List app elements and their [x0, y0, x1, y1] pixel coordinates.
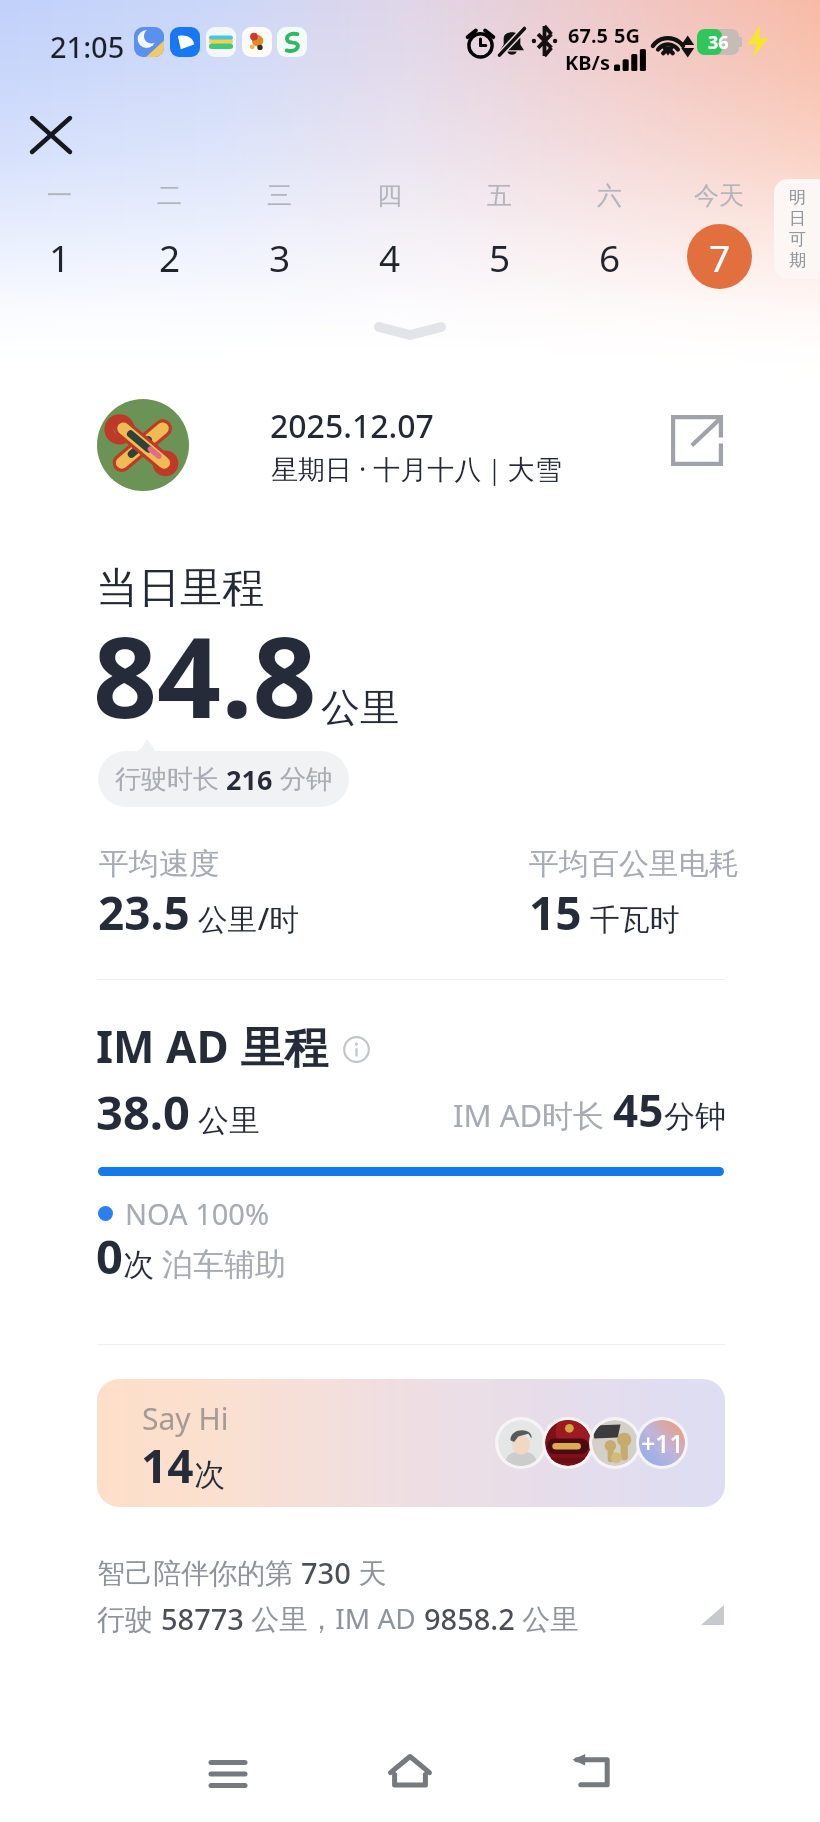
staticText: 泊车辅助 — [154, 1242, 287, 1284]
staticText: Say Hi — [142, 1398, 229, 1439]
staticText: 公里 — [515, 1599, 579, 1637]
staticText: 当日里程 — [96, 562, 264, 615]
staticText: 公里/时 — [190, 898, 300, 939]
staticText: 千瓦时 — [582, 898, 680, 939]
staticText: 58773 — [161, 1599, 244, 1638]
button[interactable]: 六 — [554, 180, 664, 289]
staticText: 5G — [614, 22, 640, 49]
staticText: 1 — [49, 232, 71, 282]
button[interactable]: 一 — [4, 180, 114, 289]
button[interactable]: Share — [666, 409, 728, 471]
staticText: 38.0 — [96, 1080, 190, 1144]
staticText: 次 — [194, 1455, 225, 1494]
staticText: 9858.2 — [424, 1599, 515, 1638]
button[interactable]: 今天 — [664, 180, 774, 289]
staticText: 智己陪伴你的第 — [97, 1553, 301, 1591]
staticText: 分钟 — [280, 763, 332, 796]
staticText: 2025.12.07 — [270, 404, 434, 448]
staticText: 67.5 — [568, 22, 608, 49]
staticText: 行驶 — [97, 1599, 161, 1637]
staticText: 84.8 — [93, 598, 317, 751]
staticText: 三 — [267, 180, 292, 211]
staticText: 4 — [379, 232, 401, 282]
staticText: 2 — [159, 232, 181, 282]
staticText: 日 — [789, 208, 806, 229]
staticText: 公里 — [190, 1098, 261, 1140]
button[interactable]: 二 — [114, 180, 224, 289]
staticText: +11 — [641, 1426, 684, 1460]
staticText: KB/s — [565, 49, 610, 76]
button[interactable]: 四 — [334, 180, 444, 289]
staticText: 四 — [377, 180, 402, 211]
staticText: 星期日 · 十月十八｜大雪 — [271, 450, 562, 487]
staticText: 3 — [269, 232, 291, 282]
staticText: 明 — [789, 187, 806, 208]
staticText: 23.5 — [98, 881, 190, 944]
button[interactable]: Home — [365, 1726, 455, 1816]
button[interactable]: 三 — [224, 180, 334, 289]
staticText: NOA 100% — [125, 1194, 270, 1233]
staticText: 平均速度 — [99, 845, 219, 883]
staticText: IM AD时长 — [453, 1094, 613, 1136]
staticText: 行驶时长 — [115, 763, 219, 796]
staticText: 次 — [123, 1245, 154, 1284]
staticText: 二 — [157, 180, 182, 211]
button[interactable]: Close — [17, 101, 85, 169]
staticText: 天 — [351, 1553, 387, 1591]
staticText: 45 — [613, 1080, 664, 1140]
staticText: 730 — [301, 1553, 351, 1592]
staticText: 一 — [47, 180, 72, 211]
staticText: 216 — [219, 761, 280, 798]
staticText: 平均百公里电耗 — [529, 845, 739, 883]
button[interactable]: Profile — [97, 399, 189, 491]
staticText: 六 — [597, 180, 622, 211]
button[interactable]: Back — [547, 1727, 637, 1817]
staticText: 五 — [487, 180, 512, 211]
staticText: 6 — [599, 232, 621, 282]
staticText: 公里 — [321, 683, 399, 732]
staticText: 14 — [141, 1434, 194, 1497]
staticText: 7 — [709, 232, 731, 282]
staticText: 公里，IM AD — [244, 1599, 424, 1637]
staticText: 今天 — [694, 180, 744, 211]
staticText: IM AD 里程 — [96, 1016, 329, 1076]
staticText: 21:05 — [50, 27, 125, 66]
staticText: 期 — [789, 250, 806, 271]
button[interactable]: Recents — [183, 1729, 273, 1819]
staticText: 15 — [529, 881, 582, 944]
button[interactable]: 明 — [774, 179, 820, 279]
staticText: 可 — [789, 229, 806, 250]
staticText: 分钟 — [664, 1097, 726, 1136]
staticText: 0 — [96, 1224, 123, 1288]
staticText: 5 — [489, 232, 511, 282]
button[interactable]: Say Hi — [97, 1379, 725, 1507]
staticText: 36 — [708, 30, 729, 55]
button[interactable]: 五 — [444, 180, 554, 289]
